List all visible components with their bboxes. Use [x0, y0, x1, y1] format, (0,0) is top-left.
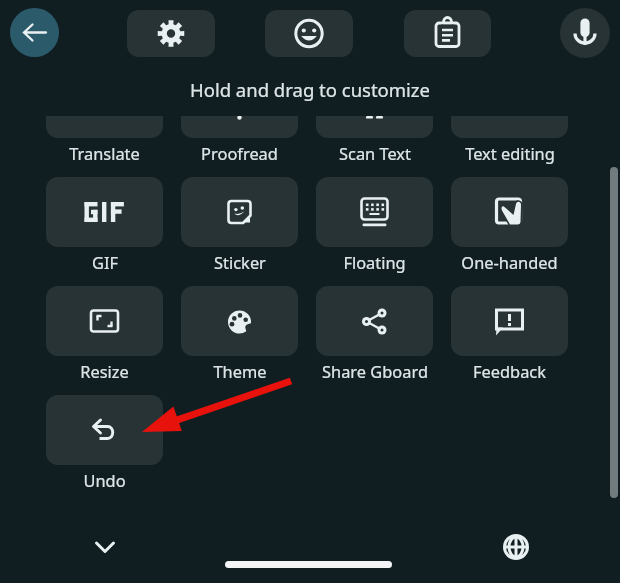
staticText: Undo	[83, 469, 126, 491]
button[interactable]: Feedback	[451, 286, 568, 356]
button[interactable]: One-handed	[451, 177, 568, 247]
button[interactable]: Text editing	[451, 116, 568, 138]
button[interactable]: Resize	[46, 286, 163, 356]
staticText: Feedback	[473, 360, 546, 382]
button[interactable]: Undo	[46, 395, 163, 465]
button[interactable]: Emoji	[265, 10, 353, 57]
staticText: Share Gboard	[322, 360, 428, 382]
staticText: Hold and drag to customize	[190, 77, 431, 102]
staticText: Sticker	[214, 251, 266, 273]
button[interactable]: Voice input	[560, 8, 610, 58]
button[interactable]: Theme	[181, 286, 298, 356]
button[interactable]: Settings	[127, 10, 215, 57]
button[interactable]: Hide keyboard	[85, 527, 125, 567]
button[interactable]: Scan Text	[316, 116, 433, 138]
button[interactable]: Translate	[46, 116, 163, 138]
button[interactable]: Change language	[496, 527, 536, 567]
button[interactable]: Sticker	[181, 177, 298, 247]
button[interactable]: Back	[10, 8, 59, 57]
staticText: GIF	[92, 251, 118, 273]
staticText: Scan Text	[339, 142, 411, 164]
button[interactable]: Clipboard	[404, 10, 491, 57]
staticText: Translate	[69, 142, 140, 164]
button[interactable]: Proofread	[181, 116, 298, 138]
staticText: Resize	[80, 360, 129, 382]
staticText: Theme	[213, 360, 267, 382]
button[interactable]: Floating	[316, 177, 433, 247]
staticText: Floating	[343, 251, 406, 273]
staticText: One-handed	[461, 251, 558, 273]
staticText: Proofread	[201, 142, 278, 164]
button[interactable]: Share Gboard	[316, 286, 433, 356]
button[interactable]: GIF	[46, 177, 163, 247]
staticText: Text editing	[465, 142, 555, 164]
